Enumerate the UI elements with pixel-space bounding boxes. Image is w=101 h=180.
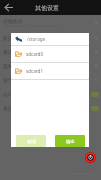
button[interactable]: 隐私设置 bbox=[0, 59, 101, 73]
staticText: 取消 bbox=[27, 139, 36, 144]
button[interactable]: 新消息通知 bbox=[0, 31, 101, 45]
button[interactable]: Power bbox=[85, 152, 96, 163]
staticText: 新消息通知 bbox=[3, 35, 27, 41]
staticText: 省流量模式 bbox=[3, 105, 27, 111]
button[interactable]: 确定 bbox=[55, 135, 85, 147]
staticText: sdcard0 bbox=[26, 51, 44, 57]
staticText: /storage bbox=[27, 36, 46, 42]
button[interactable]: sdcard1 bbox=[11, 63, 89, 79]
button[interactable]: 聊天背景 bbox=[0, 73, 101, 87]
button[interactable]: sdcard0 bbox=[11, 46, 89, 62]
button[interactable]: 通话设置 bbox=[0, 45, 101, 59]
button[interactable]: 取消 bbox=[16, 135, 46, 147]
staticText: 通话设置 bbox=[3, 49, 23, 55]
button[interactable]: 省流量模式 bbox=[0, 101, 101, 115]
staticText: 其他设置 bbox=[35, 4, 59, 12]
staticText: sdcard1 bbox=[26, 68, 44, 74]
staticText: 存储路径 bbox=[3, 18, 23, 24]
staticText: 聊天背景 bbox=[3, 77, 23, 83]
staticText: 自动下载 bbox=[3, 91, 23, 97]
button[interactable]: 自动下载 bbox=[0, 87, 101, 101]
staticText: 隐私设置 bbox=[3, 63, 23, 69]
button[interactable]: /storage bbox=[11, 33, 89, 45]
staticText: 确定 bbox=[66, 139, 75, 144]
button[interactable]: Back bbox=[0, 0, 16, 15]
